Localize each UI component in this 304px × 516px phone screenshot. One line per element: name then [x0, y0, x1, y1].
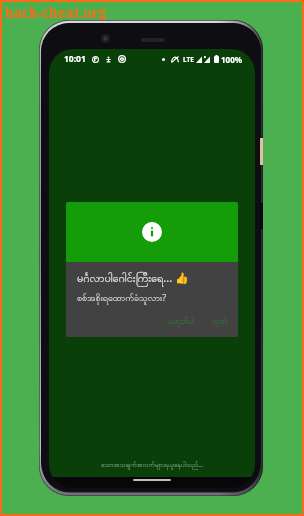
button[interactable]: မဟုတ်ပါ — [164, 313, 199, 331]
button[interactable]: ဟုတ် — [208, 313, 232, 331]
staticText: စစ်အစိုးရထောက်ခံသူလား? — [77, 291, 167, 305]
staticText: သောအသချက်အလက်များရယူနေပါသည်... — [101, 460, 204, 470]
staticText: မင်္ဂလာပါဂေါင်းကြီးရေ... 👍 — [77, 270, 189, 287]
staticText: 10:01 — [64, 53, 86, 65]
staticText: ဟုတ် — [212, 316, 228, 328]
staticText: hack-cheat.org — [5, 4, 107, 22]
staticText: LTE — [183, 55, 194, 64]
staticText: 100% — [221, 54, 242, 65]
staticText: မဟုတ်ပါ — [168, 316, 195, 328]
